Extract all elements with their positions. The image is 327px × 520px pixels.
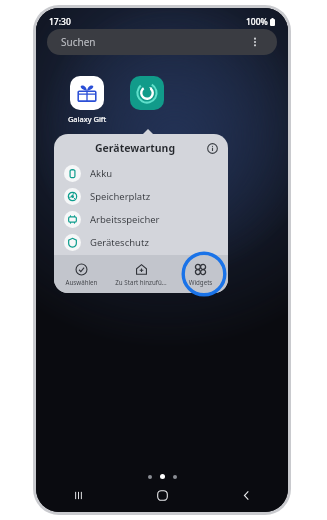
button[interactable]: Akku <box>54 162 228 185</box>
staticText: Auswählen <box>54 278 109 286</box>
staticText: Akku <box>90 167 113 180</box>
button[interactable] <box>121 76 173 110</box>
button[interactable]: Suchen <box>47 29 277 55</box>
button[interactable]: Zurück <box>204 478 288 512</box>
staticText: Arbeitsspeicher <box>90 213 160 226</box>
button[interactable]: Auswählen <box>54 263 109 286</box>
staticText: Galaxy Gift <box>61 114 113 124</box>
button[interactable]: Info <box>204 140 220 156</box>
staticText: 100% <box>246 16 268 28</box>
staticText: Speicherplatz <box>90 190 151 203</box>
staticText: Geräteschutz <box>90 236 149 249</box>
staticText: Gerätewartung <box>95 141 176 155</box>
button[interactable]: Widgets <box>173 263 228 286</box>
button[interactable]: Speicherplatz <box>54 185 228 208</box>
button[interactable]: Zu Start hinzufü... <box>109 263 173 286</box>
staticText: Zu Start hinzufü... <box>109 278 173 286</box>
button[interactable]: Arbeitsspeicher <box>54 208 228 231</box>
button[interactable]: Galaxy Gift <box>61 76 113 124</box>
staticText: 17:30 <box>49 16 71 28</box>
button[interactable]: Letzte Apps <box>36 478 120 512</box>
staticText: Widgets <box>173 278 228 286</box>
staticText: Suchen <box>61 35 96 49</box>
button[interactable]: Startbildschirm <box>120 478 204 512</box>
button[interactable]: Mehr Optionen <box>247 34 263 50</box>
button[interactable]: Geräteschutz <box>54 231 228 254</box>
